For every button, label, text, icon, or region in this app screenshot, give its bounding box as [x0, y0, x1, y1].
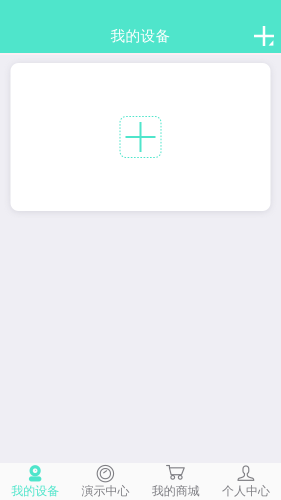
button[interactable]: 个人中心: [211, 463, 281, 500]
staticText: 我的商城: [152, 484, 200, 498]
button[interactable]: Add device: [247, 19, 281, 53]
button[interactable]: 我的商城: [140, 463, 211, 500]
staticText: 演示中心: [81, 484, 129, 498]
staticText: 我的设备: [110, 27, 170, 45]
staticText: 我的设备: [11, 484, 59, 498]
button[interactable]: Add device: [120, 116, 161, 157]
button[interactable]: 我的设备: [0, 463, 70, 500]
button[interactable]: 演示中心: [70, 463, 140, 500]
staticText: 个人中心: [222, 484, 270, 498]
